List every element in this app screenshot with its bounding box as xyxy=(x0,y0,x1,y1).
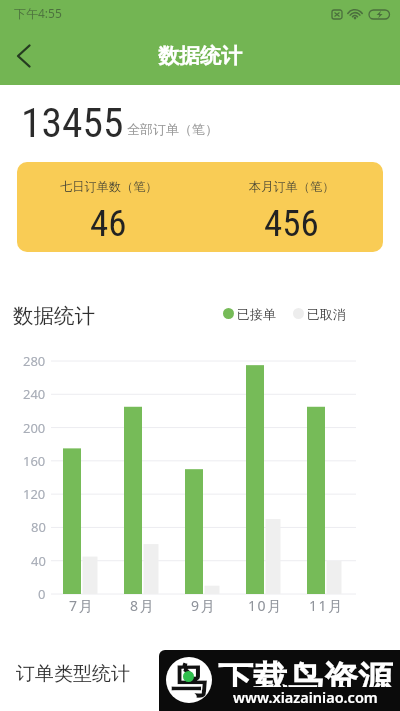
staticText: 9月 xyxy=(191,596,217,614)
staticText: 七日订单数（笔） xyxy=(60,179,158,194)
staticText: 120 xyxy=(23,485,46,503)
staticText: 7月 xyxy=(69,596,95,614)
staticText: www.xiazainiao.com xyxy=(233,687,378,705)
staticText: 订单类型统计 xyxy=(16,662,130,686)
staticText: 全部订单（笔） xyxy=(127,121,218,137)
staticText: 8月 xyxy=(130,596,156,614)
button[interactable]: 本月订单（笔） xyxy=(200,162,383,252)
staticText: 数据统计 xyxy=(158,43,242,69)
staticText: 456 xyxy=(264,202,319,239)
staticText: 280 xyxy=(23,352,46,370)
staticText: 11月 xyxy=(309,596,344,614)
staticText: 鸟 xyxy=(171,658,207,703)
staticText: 160 xyxy=(23,452,46,470)
button[interactable]: 七日订单数（笔） xyxy=(17,162,200,252)
staticText: 13455 xyxy=(21,98,124,145)
staticText: 46 xyxy=(90,202,127,239)
staticText: 数据统计 xyxy=(13,303,95,327)
staticText: 0 xyxy=(38,585,46,603)
staticText: 已接单 xyxy=(237,306,276,322)
staticText: 已取消 xyxy=(307,306,346,322)
staticText: 下午4:55 xyxy=(14,5,62,21)
staticText: 40 xyxy=(31,552,46,570)
staticText: 10月 xyxy=(248,596,283,614)
staticText: 200 xyxy=(23,419,46,437)
staticText: 240 xyxy=(23,385,46,403)
staticText: 下载鸟资源 xyxy=(218,657,393,687)
button[interactable] xyxy=(6,36,42,76)
staticText: 本月订单（笔） xyxy=(249,179,335,194)
staticText: 80 xyxy=(31,518,46,536)
button[interactable]: 鸟 xyxy=(159,650,400,711)
